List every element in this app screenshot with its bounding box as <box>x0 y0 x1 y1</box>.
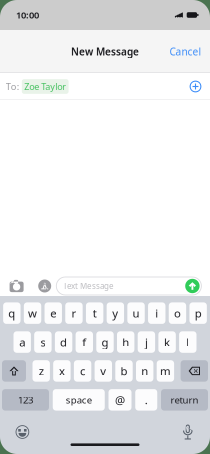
staticText: New Message <box>71 45 139 58</box>
staticText: return <box>170 393 198 406</box>
staticText: z <box>39 363 44 379</box>
staticText: n <box>141 363 148 379</box>
staticText: x <box>59 363 65 379</box>
button[interactable]: l <box>179 331 196 353</box>
button[interactable]: return <box>161 389 208 411</box>
staticText: f <box>82 334 86 350</box>
button[interactable]: u <box>127 302 145 324</box>
staticText: @ <box>115 392 125 407</box>
button[interactable]: k <box>158 331 176 353</box>
staticText: b <box>120 363 127 379</box>
staticText: Cancel <box>169 45 201 58</box>
button[interactable]: d <box>55 331 72 353</box>
button[interactable]: @ <box>108 389 131 411</box>
button[interactable]: e <box>44 302 62 324</box>
button[interactable]: App Store <box>35 276 55 296</box>
staticText: To: <box>6 80 20 93</box>
button[interactable]: 123 <box>2 389 49 411</box>
button[interactable]: . <box>135 389 157 411</box>
staticText: p <box>195 305 202 321</box>
button[interactable]: Shift <box>2 360 26 382</box>
staticText: space <box>66 393 92 406</box>
staticText: e <box>50 305 56 321</box>
staticText: w <box>28 305 37 321</box>
staticText: s <box>40 334 45 350</box>
button[interactable]: s <box>34 331 52 353</box>
button[interactable]: Add recipient <box>185 76 205 96</box>
staticText: c <box>80 363 85 379</box>
button[interactable]: space <box>53 389 105 411</box>
button[interactable]: b <box>115 360 133 382</box>
button[interactable]: t <box>86 302 103 324</box>
button[interactable]: n <box>136 360 153 382</box>
button[interactable]: w <box>24 302 41 324</box>
button[interactable]: h <box>117 331 134 353</box>
staticText: m <box>160 363 171 379</box>
button[interactable]: Camera <box>7 276 27 296</box>
staticText: Text Message <box>63 281 114 291</box>
button[interactable]: a <box>13 331 31 353</box>
button[interactable]: g <box>96 331 114 353</box>
staticText: 123 <box>18 393 33 406</box>
staticText: o <box>174 305 181 321</box>
button[interactable]: j <box>138 331 155 353</box>
button[interactable]: Dictation <box>178 422 198 442</box>
staticText: g <box>101 334 108 350</box>
staticText: u <box>132 305 139 321</box>
button[interactable]: i <box>148 302 165 324</box>
button[interactable]: c <box>74 360 91 382</box>
button[interactable]: y <box>107 302 124 324</box>
button[interactable]: Emoji keyboard <box>12 422 32 442</box>
button[interactable]: Cancel <box>165 40 205 63</box>
staticText: a <box>19 334 25 350</box>
button[interactable]: Send <box>185 279 200 293</box>
staticText: y <box>112 305 118 321</box>
staticText: k <box>164 334 170 350</box>
button[interactable]: f <box>76 331 93 353</box>
staticText: r <box>71 305 76 321</box>
staticText: 10:00 <box>16 9 39 21</box>
staticText: Zoe Taylor <box>24 80 66 93</box>
button[interactable]: q <box>3 302 20 324</box>
staticText: . <box>145 392 148 407</box>
button[interactable]: o <box>169 302 186 324</box>
button[interactable]: m <box>157 360 174 382</box>
staticText: i <box>155 305 158 321</box>
button[interactable]: Delete <box>181 360 208 382</box>
button[interactable]: p <box>189 302 207 324</box>
staticText: l <box>186 334 189 350</box>
button[interactable]: v <box>95 360 112 382</box>
staticText: h <box>122 334 129 350</box>
staticText: q <box>8 305 15 321</box>
staticText: j <box>145 334 148 350</box>
button[interactable]: x <box>53 360 71 382</box>
staticText: v <box>100 363 106 379</box>
button[interactable]: r <box>65 302 83 324</box>
staticText: t <box>93 305 97 321</box>
button[interactable]: z <box>32 360 50 382</box>
staticText: d <box>60 334 67 350</box>
